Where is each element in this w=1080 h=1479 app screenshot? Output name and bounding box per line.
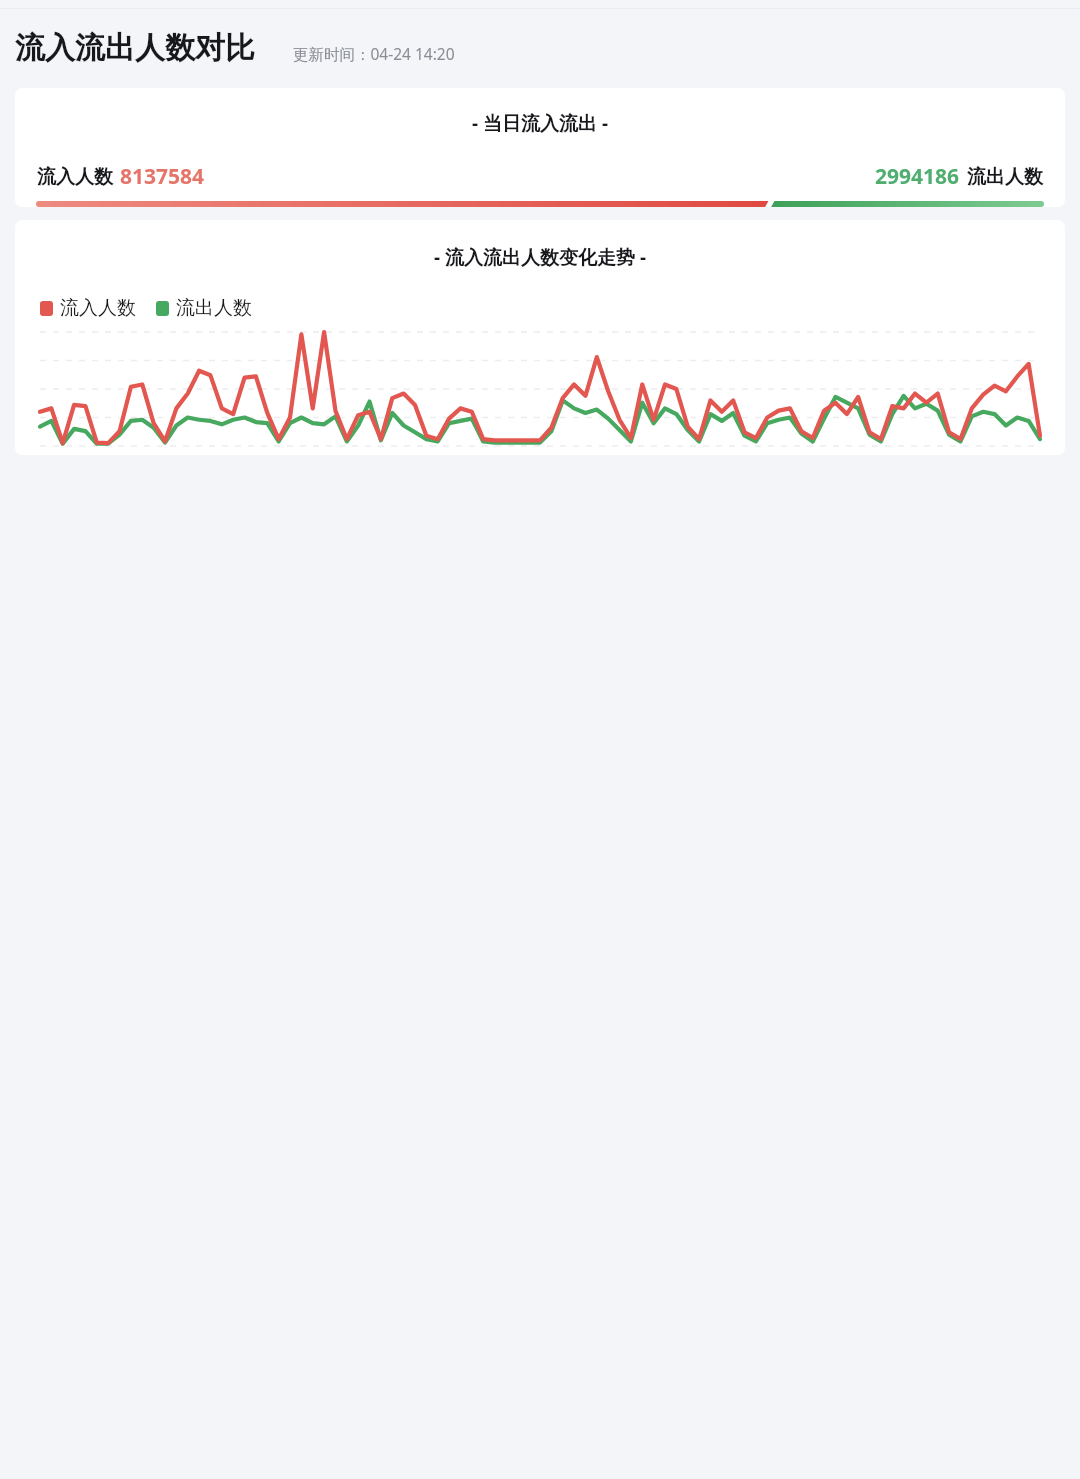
- staticText: 流出人数: [176, 296, 252, 320]
- staticText: - 流入流出人数变化走势 -: [15, 244, 1065, 270]
- staticText: - 当日流入流出 -: [15, 110, 1065, 136]
- staticText: 流出人数: [967, 165, 1043, 189]
- staticText: 8137584: [120, 162, 205, 191]
- button[interactable]: 流出人数: [156, 296, 252, 320]
- staticText: 流入人数: [60, 296, 136, 320]
- staticText: 更新时间：04-24 14:20: [293, 43, 455, 64]
- staticText: 流入流出人数对比: [15, 29, 255, 67]
- button[interactable]: - 流入流出人数变化走势 -: [15, 220, 1065, 455]
- button[interactable]: - 当日流入流出 -: [15, 88, 1065, 207]
- button[interactable]: 流入人数: [40, 296, 136, 320]
- staticText: 2994186: [875, 162, 960, 191]
- staticText: 流入人数: [37, 165, 113, 189]
